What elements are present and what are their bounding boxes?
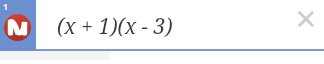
button[interactable]: Close [292, 5, 320, 33]
staticText: (x + 1)(x − 3) [57, 12, 173, 41]
button[interactable]: 1 [0, 0, 36, 51]
staticText: 1 [3, 0, 9, 12]
other: App logo [4, 14, 31, 41]
